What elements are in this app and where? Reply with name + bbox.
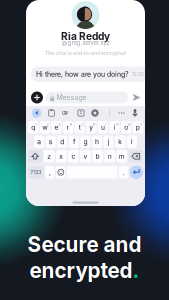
button[interactable]: Clipboard xyxy=(46,106,57,119)
button[interactable]: t xyxy=(74,121,85,133)
staticText: 9 xyxy=(128,122,130,126)
staticText: 8 xyxy=(116,122,118,126)
button[interactable]: z xyxy=(44,150,55,162)
button[interactable]: , xyxy=(45,166,55,178)
button[interactable]: More xyxy=(116,106,127,119)
staticText: . xyxy=(132,258,139,283)
button[interactable]: Voice input xyxy=(129,106,140,119)
staticText: 3 xyxy=(58,122,60,126)
button[interactable]: c xyxy=(68,150,79,162)
staticText: This chat is end-to-end encrypted xyxy=(45,50,126,56)
staticText: Ria Reddy xyxy=(61,30,110,43)
button[interactable]: b xyxy=(92,150,103,162)
button[interactable]: l xyxy=(127,135,137,148)
button[interactable]: Backspace xyxy=(128,150,143,162)
staticText: x xyxy=(59,152,63,160)
button[interactable]: m xyxy=(116,150,127,162)
button[interactable]: j xyxy=(103,135,114,148)
button[interactable]: k xyxy=(115,135,125,148)
button[interactable]: o xyxy=(121,121,131,133)
staticText: a xyxy=(37,138,41,146)
staticText: , xyxy=(49,168,51,176)
button[interactable]: Collapse toolbar xyxy=(31,106,42,119)
button[interactable]: GIF xyxy=(60,106,71,119)
staticText: 12:32 xyxy=(132,71,144,77)
button[interactable]: q xyxy=(28,121,38,133)
staticText: b xyxy=(96,152,100,160)
button[interactable]: y xyxy=(86,121,96,133)
button[interactable]: g xyxy=(80,135,91,148)
staticText: v xyxy=(83,152,87,160)
staticText: 7 xyxy=(105,122,107,126)
button[interactable]: Send xyxy=(128,93,141,101)
staticText: j xyxy=(108,138,110,146)
staticText: e xyxy=(54,123,58,131)
button[interactable]: s xyxy=(46,135,56,148)
button[interactable]: u xyxy=(98,121,108,133)
staticText: y xyxy=(89,123,93,131)
staticText: 1 xyxy=(35,122,37,126)
staticText: w xyxy=(42,123,47,131)
button[interactable]: f xyxy=(69,135,79,148)
staticText: k xyxy=(118,138,122,146)
staticText: u xyxy=(101,123,105,131)
button[interactable]: i xyxy=(109,121,120,133)
button[interactable]: Settings xyxy=(89,106,100,119)
staticText: 4 xyxy=(70,122,72,126)
staticText: c xyxy=(71,152,75,160)
button[interactable]: v xyxy=(80,150,91,162)
staticText: @greg.server.xyz xyxy=(61,39,109,46)
staticText: p xyxy=(136,123,140,131)
button[interactable]: x xyxy=(56,150,67,162)
staticText: Message xyxy=(57,93,87,102)
staticText: 6 xyxy=(93,122,95,126)
button[interactable]: Send xyxy=(129,165,143,179)
staticText: m xyxy=(119,152,125,160)
button[interactable]: h xyxy=(92,135,102,148)
staticText: encrypted xyxy=(29,258,132,283)
staticText: l xyxy=(131,138,133,146)
staticText: q xyxy=(31,123,35,131)
staticText: i xyxy=(114,123,116,131)
button[interactable]: Emoji xyxy=(56,166,66,178)
button[interactable]: ?123 xyxy=(28,166,44,178)
staticText: . xyxy=(122,168,124,176)
button[interactable]: a xyxy=(34,135,44,148)
staticText: 5 xyxy=(81,122,83,126)
staticText: Hi there, how are you doing? xyxy=(36,70,129,78)
button[interactable]: . xyxy=(119,166,128,178)
button[interactable]: d xyxy=(57,135,67,148)
button[interactable]: Stickers xyxy=(75,106,86,119)
button[interactable]: w xyxy=(40,121,50,133)
staticText: ?123 xyxy=(30,169,41,175)
staticText: GIF xyxy=(62,110,69,116)
button[interactable]: n xyxy=(104,150,115,162)
staticText: o xyxy=(124,123,128,131)
staticText: d xyxy=(60,138,64,146)
button[interactable]: Add attachment xyxy=(31,91,43,103)
staticText: t xyxy=(79,123,81,131)
staticText: 0 xyxy=(140,122,142,126)
button[interactable]: e xyxy=(51,121,62,133)
staticText: r xyxy=(67,123,70,131)
staticText: h xyxy=(95,138,99,146)
button[interactable]: r xyxy=(63,121,73,133)
staticText: f xyxy=(73,138,75,146)
staticText: z xyxy=(47,152,51,160)
staticText: 2 xyxy=(47,122,49,126)
button[interactable]: p xyxy=(133,121,143,133)
staticText: g xyxy=(83,138,87,146)
button[interactable]: Shift xyxy=(28,150,42,162)
staticText: n xyxy=(108,152,112,160)
staticText: s xyxy=(49,138,53,146)
staticText: Secure and xyxy=(27,232,141,257)
